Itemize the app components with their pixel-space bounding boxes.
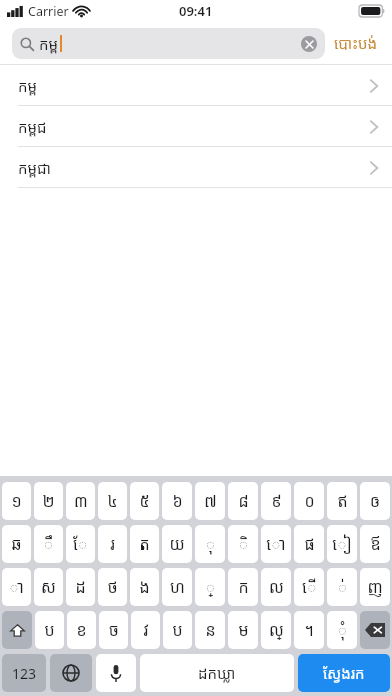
staticText: វ (143, 619, 149, 641)
button[interactable]: ។ (294, 611, 324, 649)
button[interactable]: ឆ (2, 525, 31, 563)
button[interactable]: ម (228, 611, 258, 649)
button[interactable]: ក (228, 568, 258, 606)
staticText: ញ (367, 576, 383, 598)
button[interactable]: ឥ (327, 482, 357, 520)
button[interactable]: កម្ពជា (0, 147, 392, 188)
button[interactable]: ោ (261, 525, 291, 563)
button[interactable]: រ (98, 525, 127, 563)
button[interactable]: ៦ (162, 482, 192, 520)
staticText: ច (109, 619, 119, 641)
staticText: ល (269, 576, 284, 598)
staticText: 123 (12, 664, 37, 683)
staticText: ស្វែងរក (323, 663, 365, 683)
button[interactable]: ៤ (98, 482, 127, 520)
button[interactable]: ល្ (261, 611, 291, 649)
button[interactable]: ស (34, 568, 63, 606)
button[interactable]: ត (130, 525, 159, 563)
staticText: កម្ពជ (18, 117, 47, 137)
button[interactable]: វ (131, 611, 160, 649)
staticText: ឪ (370, 533, 381, 555)
staticText: ១ (11, 490, 22, 512)
staticText: ៩ (271, 490, 282, 512)
button[interactable]: ៣ (66, 482, 95, 520)
button[interactable]: ន (195, 611, 225, 649)
staticText: កម្ព (39, 34, 59, 54)
button[interactable]: ឹ (34, 525, 63, 563)
button[interactable]: ើ (294, 568, 324, 606)
button[interactable]: ៨ (228, 482, 258, 520)
staticText: ើ (302, 576, 317, 598)
button[interactable]: ហ (162, 568, 192, 606)
staticText: ។ (304, 619, 314, 641)
button[interactable]: ១ (2, 482, 31, 520)
button[interactable]: ប (35, 611, 64, 649)
staticText: កម្ព (18, 76, 38, 96)
button[interactable]: ៀ (327, 525, 357, 563)
button[interactable]: ុ (195, 525, 225, 563)
button[interactable]: កម្ព (12, 28, 325, 59)
button[interactable]: ០ (294, 482, 324, 520)
button[interactable]: ិ (228, 525, 258, 563)
staticText: ៨ (238, 490, 249, 512)
staticText: ក (238, 576, 249, 598)
staticText: 09:41 (179, 2, 213, 20)
staticText: យ (169, 533, 185, 555)
button[interactable]: ឲ (360, 482, 390, 520)
button[interactable]: ឪ (360, 525, 390, 563)
button[interactable]: កម្ព (0, 65, 392, 106)
staticText: ម (238, 619, 249, 641)
staticText: ា (9, 576, 24, 598)
button[interactable]: ៥ (130, 482, 159, 520)
staticText: ២ (42, 490, 55, 512)
button[interactable]: ៧ (195, 482, 225, 520)
button[interactable]: បោះបង់ (325, 33, 380, 53)
staticText: ុ (205, 533, 216, 555)
staticText: ៤ (107, 490, 118, 512)
staticText: ០ (304, 490, 315, 512)
staticText: ដ (75, 576, 86, 598)
button[interactable]: ញ (360, 568, 390, 606)
staticText: ង (139, 576, 150, 598)
button[interactable]: 123 (2, 654, 46, 692)
button[interactable]: យ (162, 525, 192, 563)
button[interactable]: ុំ (327, 611, 357, 649)
button[interactable]: Switch keyboard (50, 654, 92, 692)
staticText: ឥ (337, 490, 348, 512)
button[interactable]: ៩ (261, 482, 291, 520)
staticText: បោះបង់ (334, 33, 378, 53)
staticText: ៧ (204, 490, 217, 512)
staticText: ន (205, 619, 216, 641)
staticText: ឲ (370, 490, 380, 512)
staticText: ៥ (139, 490, 150, 512)
button[interactable]: ្ (195, 568, 225, 606)
button[interactable]: ដ (66, 568, 95, 606)
staticText: កម្ពជា (18, 158, 51, 178)
button[interactable]: ដកឃ្លា (140, 654, 294, 692)
button[interactable]: Dictation (96, 654, 136, 692)
button[interactable]: ង (130, 568, 159, 606)
staticText: ផ (304, 533, 315, 555)
staticText: ល្ (269, 619, 284, 641)
button[interactable]: ល (261, 568, 291, 606)
button[interactable]: Shift (2, 611, 32, 649)
button[interactable]: ់ (327, 568, 357, 606)
button[interactable]: ផ (294, 525, 324, 563)
button[interactable]: ច (99, 611, 128, 649)
button[interactable]: ២ (34, 482, 63, 520)
button[interactable]: ា (2, 568, 31, 606)
staticText: ឹ (43, 533, 54, 555)
button[interactable]: កម្ពជ (0, 106, 392, 147)
button[interactable]: ខ (67, 611, 96, 649)
button[interactable]: ប (163, 611, 192, 649)
button[interactable]: Clear text (301, 36, 317, 52)
staticText: ប (44, 619, 55, 641)
staticText: រ (110, 533, 115, 555)
staticText: ៦ (172, 490, 183, 512)
staticText: ត (139, 533, 150, 555)
button[interactable]: ស្វែងរក (298, 654, 390, 692)
button[interactable]: ែ (66, 525, 95, 563)
button[interactable]: ថ (98, 568, 127, 606)
staticText: ់ (337, 576, 348, 598)
button[interactable]: Delete (360, 611, 390, 649)
